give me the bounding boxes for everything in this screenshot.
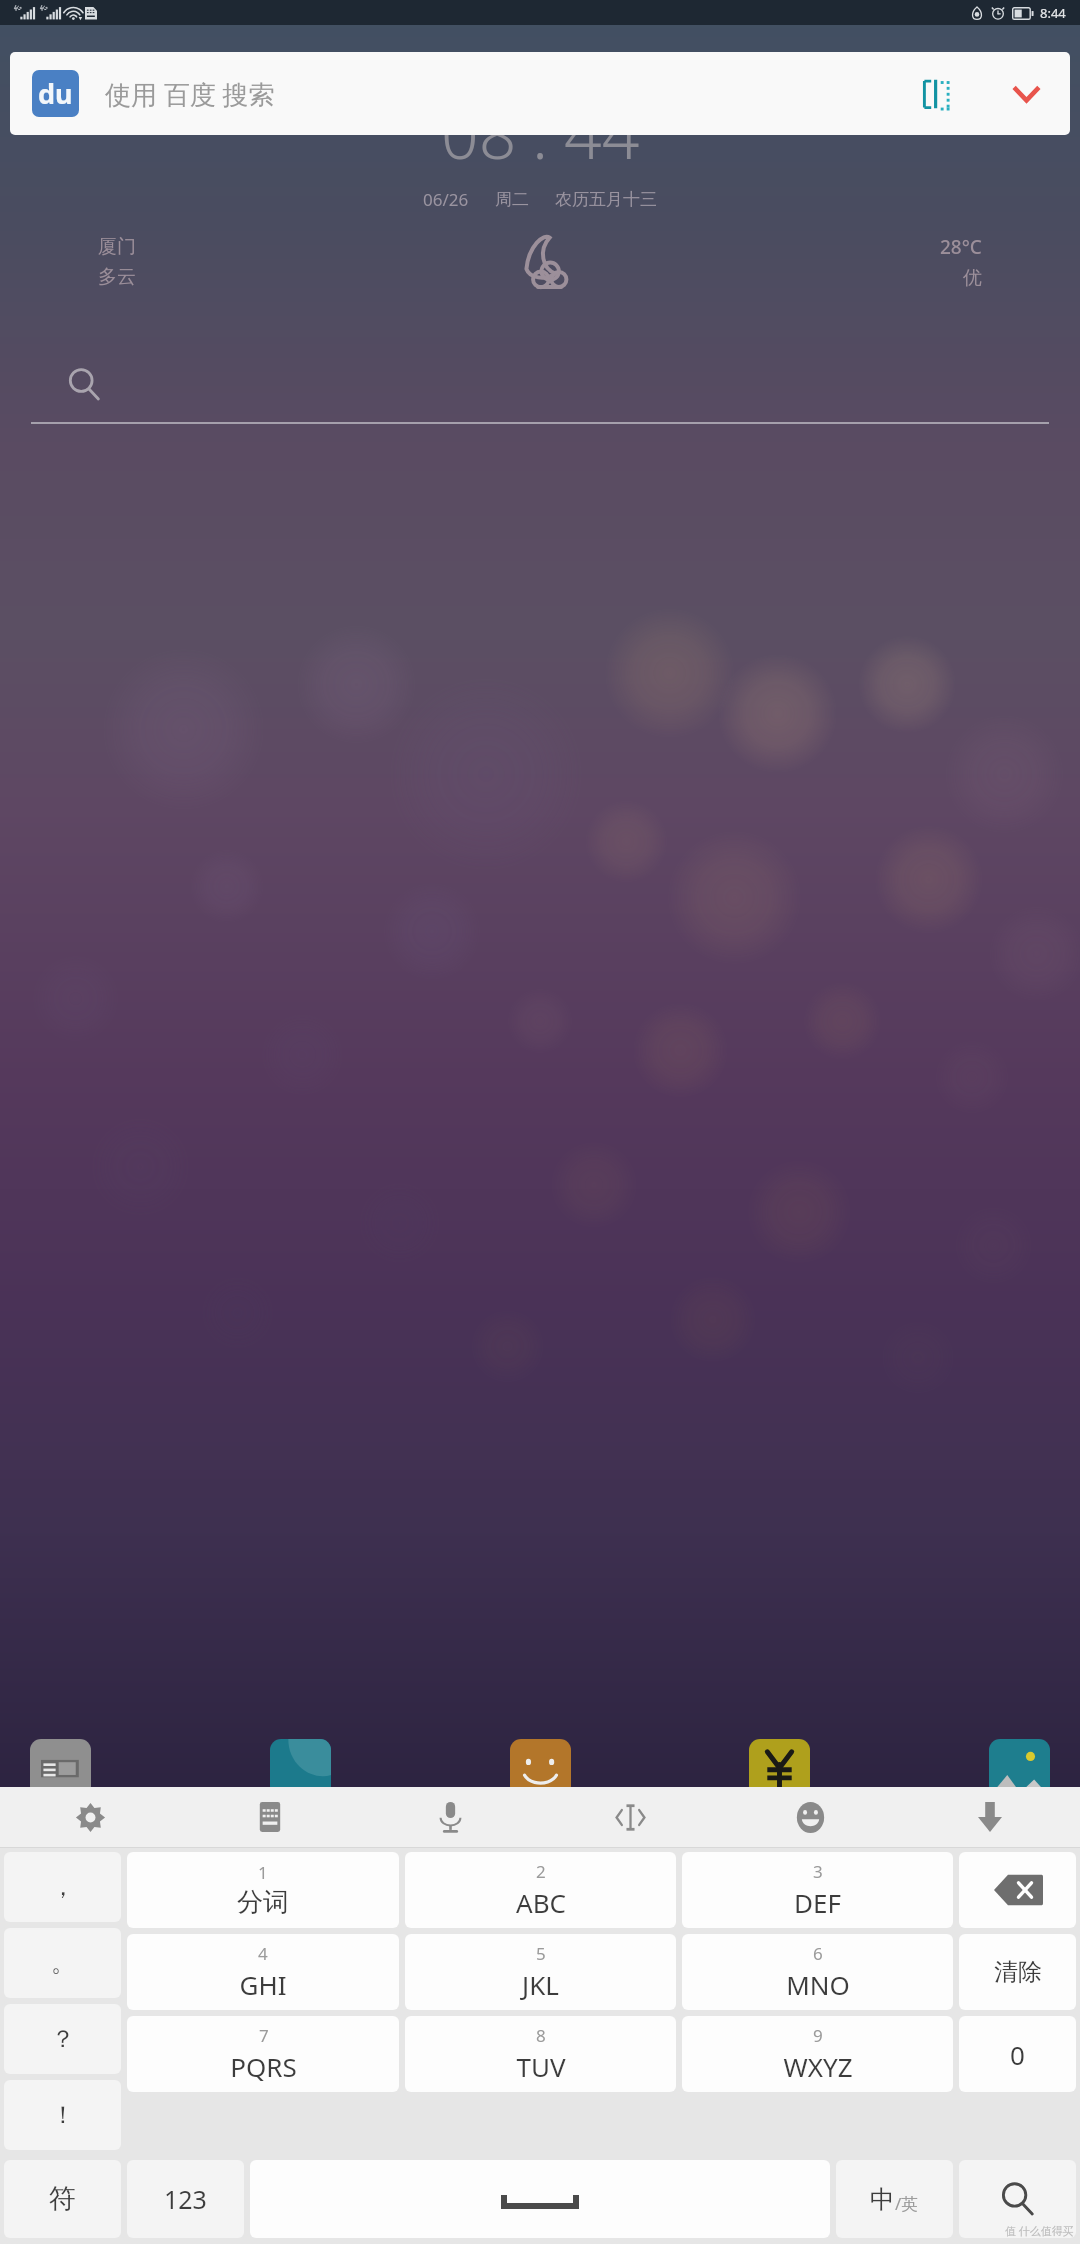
button[interactable]: ， [4,1852,121,1922]
staticText: 2 [536,1860,546,1883]
staticText: 符 [49,2182,76,2216]
staticText: 分词 [237,1886,289,1919]
button[interactable] [250,2160,830,2238]
button[interactable]: 6 [682,1934,953,2010]
staticText: 多云 [98,265,136,289]
button[interactable]: Scan code [916,72,960,116]
button[interactable] [959,1852,1076,1928]
staticText: 0 [1010,2037,1025,2072]
button[interactable]: 。 [4,1928,121,1998]
staticText: ？ [51,2024,75,2054]
staticText: du [38,75,73,112]
staticText: 中 [870,2184,895,2215]
button[interactable]: 1 [127,1852,399,1928]
staticText: 9 [813,2024,823,2047]
button[interactable]: Browser [270,1739,331,1797]
button[interactable]: Move cursor [540,1787,720,1847]
button[interactable]: Gallery [989,1739,1050,1797]
staticText: 44 [564,88,640,178]
button[interactable]: 7 [127,2016,399,2092]
staticText: ABC [516,1885,566,1920]
button[interactable]: ？ [4,2004,121,2074]
staticText: 123 [164,2182,207,2216]
staticText: 优 [963,266,982,290]
staticText: 06/26 [423,188,469,211]
staticText: 8:44 [1040,4,1066,22]
staticText: 值 什么值得买 [1005,2223,1074,2238]
staticText: /英 [895,2192,919,2215]
staticText: 08 [441,88,517,178]
button[interactable]: 9 [682,2016,953,2092]
button[interactable]: 清除 [959,1934,1076,2010]
staticText: 。 [51,1948,75,1978]
button[interactable]: 4 [127,1934,399,2010]
button[interactable]: Collapse [1004,72,1048,116]
staticText: 6 [813,1942,823,1965]
staticText: 使用 百度 搜索 [105,76,275,112]
button[interactable]: Emoji [720,1787,900,1847]
button[interactable]: 符 [4,2160,121,2238]
button[interactable]: Search [31,353,1049,415]
button[interactable]: 123 [127,2160,244,2238]
staticText: . [532,88,549,178]
button[interactable]: 中 [836,2160,953,2238]
staticText: 清除 [994,1957,1042,1987]
staticText: 28°C [940,234,982,260]
staticText: 7 [259,2024,269,2047]
staticText: MNO [786,1967,850,2002]
button[interactable]: 0 [959,2016,1076,2092]
staticText: GHI [239,1967,287,2002]
staticText: 农历五月十三 [555,189,657,210]
staticText: 厦门 [98,235,136,259]
staticText: 8 [536,2024,546,2047]
staticText: JKL [522,1967,559,2002]
button[interactable]: Settings [0,1787,180,1847]
button[interactable]: Messages [510,1739,571,1797]
button[interactable]: 3 [682,1852,953,1928]
button[interactable]: du [10,52,1070,135]
staticText: 1 [258,1861,268,1884]
staticText: ， [51,1872,75,1902]
staticText: WXYZ [783,2049,853,2084]
button[interactable]: News [30,1739,91,1797]
staticText: 3 [813,1860,823,1883]
staticText: TUV [516,2049,566,2084]
staticText: 周二 [495,189,529,210]
button[interactable]: 2 [405,1852,676,1928]
button[interactable]: Wallet [749,1739,810,1797]
staticText: ！ [51,2100,75,2130]
button[interactable]: 8 [405,2016,676,2092]
button[interactable]: 5 [405,1934,676,2010]
staticText: PQRS [230,2049,297,2084]
staticText: 5 [536,1942,546,1965]
button[interactable]: Hide keyboard [900,1787,1080,1847]
staticText: 4 [258,1942,268,1965]
button[interactable] [959,2160,1076,2238]
button[interactable]: ！ [4,2080,121,2150]
staticText: DEF [794,1885,841,1920]
button[interactable]: Keyboard layout [180,1787,360,1847]
button[interactable]: Voice input [360,1787,540,1847]
